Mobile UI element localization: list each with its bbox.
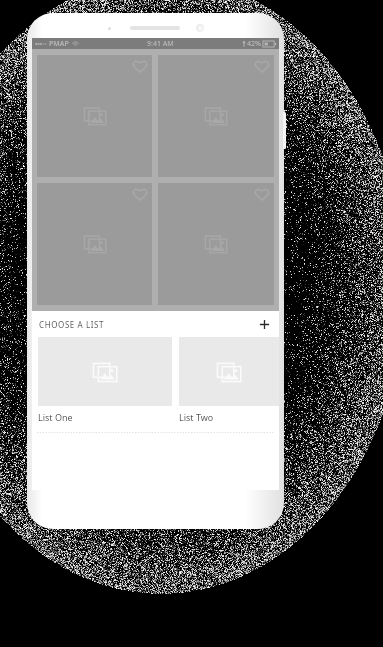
staticText: CHOOSE A LIST [39,319,105,330]
staticText: List Two [179,411,214,423]
button[interactable]: List Two [179,337,279,428]
staticText: 9:41 AM [147,39,174,49]
button[interactable]: Favourite [255,60,269,74]
staticText: List One [38,411,73,423]
button[interactable]: Favourite [133,188,147,202]
staticText: 42% [247,39,261,49]
button[interactable]: Favourite [255,188,269,202]
staticText: PMAP [49,39,69,49]
button[interactable]: List One [38,337,172,428]
button[interactable]: Add list [255,315,273,333]
button[interactable]: Favourite [133,60,147,74]
